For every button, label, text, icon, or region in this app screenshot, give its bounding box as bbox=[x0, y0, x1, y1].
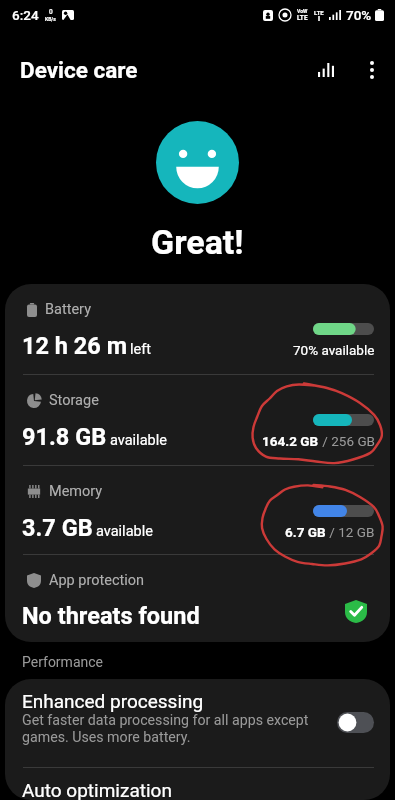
button[interactable]: Storage bbox=[5, 375, 390, 465]
button[interactable]: App protection bbox=[5, 555, 390, 642]
staticText: No threats found bbox=[22, 602, 200, 630]
button[interactable]: Memory bbox=[5, 466, 390, 554]
staticText: Battery bbox=[45, 301, 91, 318]
button[interactable]: Usage statistics bbox=[303, 47, 349, 93]
staticText: VoW bbox=[297, 8, 308, 14]
staticText: 3.7 GB bbox=[22, 514, 93, 542]
staticText: available bbox=[110, 432, 167, 449]
staticText: Enhanced processing bbox=[22, 690, 204, 712]
staticText: 6.7 GB bbox=[285, 524, 326, 540]
staticText: 0 bbox=[49, 8, 53, 16]
button[interactable]: Auto optimization bbox=[5, 768, 390, 800]
staticText: 70% available bbox=[293, 342, 375, 358]
staticText: Storage bbox=[49, 392, 99, 409]
staticText: Memory bbox=[49, 483, 103, 500]
staticText: / 12 GB bbox=[326, 524, 375, 540]
button[interactable]: Enhanced processing bbox=[5, 679, 390, 767]
staticText: left bbox=[130, 341, 151, 358]
staticText: Device care bbox=[20, 57, 138, 83]
staticText: Great! bbox=[151, 222, 244, 262]
button[interactable]: Enhanced processing toggle bbox=[337, 712, 374, 733]
staticText: 6:24 bbox=[12, 7, 39, 23]
staticText: KB/s bbox=[45, 16, 56, 22]
button[interactable]: More options bbox=[349, 47, 395, 93]
staticText: Get faster data processing for all apps … bbox=[22, 712, 309, 746]
button[interactable]: Battery bbox=[5, 284, 390, 374]
staticText: LTE bbox=[314, 9, 324, 16]
staticText: LTE bbox=[297, 14, 308, 22]
staticText: / 256 GB bbox=[319, 433, 375, 449]
staticText: 70% bbox=[346, 7, 372, 23]
staticText: Performance bbox=[22, 654, 103, 670]
staticText: 91.8 GB bbox=[22, 423, 107, 451]
staticText: App protection bbox=[49, 572, 145, 589]
staticText: available bbox=[96, 523, 153, 540]
staticText: Auto optimization bbox=[22, 779, 172, 800]
staticText: 12 h 26 m bbox=[22, 332, 127, 360]
staticText: 164.2 GB bbox=[262, 433, 319, 449]
